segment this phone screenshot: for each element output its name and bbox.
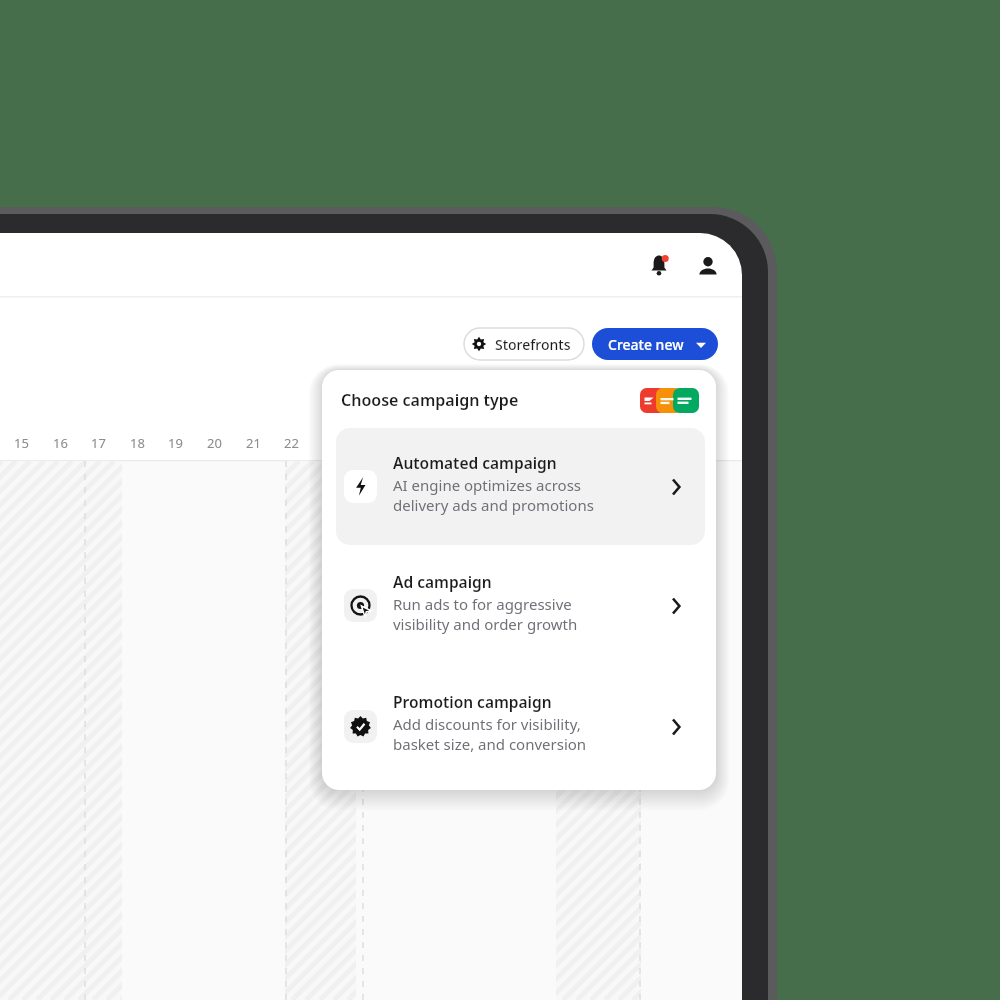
staticText: Create new xyxy=(608,335,684,354)
staticText: delivery ads and promotions xyxy=(393,495,594,515)
staticText: Storefronts xyxy=(495,335,571,354)
staticText: visibility and order growth xyxy=(393,614,578,634)
staticText: 21 xyxy=(246,434,261,452)
button[interactable]: Automated campaign xyxy=(336,428,705,545)
button[interactable]: Ad campaign xyxy=(336,549,705,666)
staticText: Add discounts for visibility, xyxy=(393,714,581,734)
staticText: basket size, and conversion xyxy=(393,734,587,754)
staticText: Promotion campaign xyxy=(393,691,552,712)
staticText: 16 xyxy=(53,434,68,452)
staticText: Automated campaign xyxy=(393,452,557,473)
staticText: 19 xyxy=(168,434,183,452)
button[interactable]: Notifications xyxy=(643,250,675,282)
staticText: 20 xyxy=(207,434,222,452)
button[interactable]: Storefronts xyxy=(464,328,584,360)
button[interactable]: Create new xyxy=(592,328,718,360)
staticText: 17 xyxy=(91,434,106,452)
staticText: AI engine optimizes across xyxy=(393,475,582,495)
staticText: Ad campaign xyxy=(393,571,492,592)
button[interactable]: Connected delivery apps xyxy=(637,385,701,416)
staticText: Choose campaign type xyxy=(341,389,519,411)
button[interactable]: Profile xyxy=(692,250,724,282)
staticText: Run ads to for aggressive xyxy=(393,594,572,614)
button[interactable]: Promotion campaign xyxy=(336,669,705,786)
staticText: 18 xyxy=(130,434,145,452)
staticText: 22 xyxy=(284,434,299,452)
staticText: 15 xyxy=(14,434,29,452)
